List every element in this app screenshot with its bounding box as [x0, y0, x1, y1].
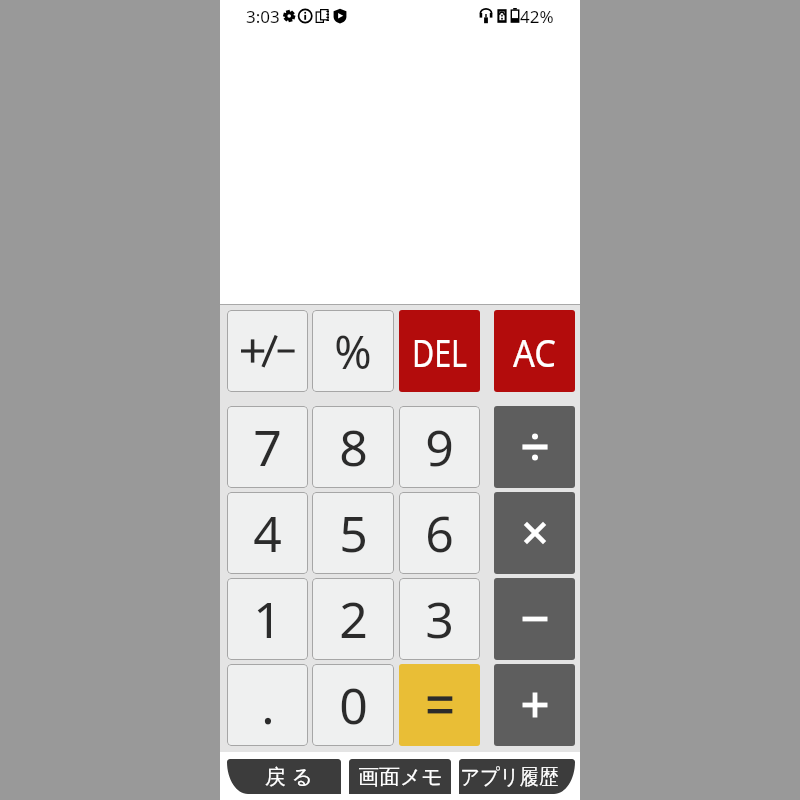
staticText: アプリ履歴	[460, 764, 559, 790]
button[interactable]: 2	[312, 578, 394, 660]
button[interactable]: .	[227, 664, 308, 746]
staticText: 42%	[520, 5, 554, 28]
staticText: 1	[253, 585, 282, 653]
button[interactable]: 7	[227, 406, 308, 488]
staticText: 2	[339, 585, 368, 653]
button[interactable]: Divide	[494, 406, 575, 488]
staticText: 7	[253, 413, 282, 481]
staticText: 3:03	[246, 5, 280, 28]
staticText: 8	[339, 413, 368, 481]
button[interactable]: DEL	[399, 310, 480, 392]
staticText: 戻 る	[265, 762, 313, 791]
staticText: 4	[253, 499, 282, 567]
button[interactable]: Plus	[494, 664, 575, 746]
staticText: 9	[425, 413, 454, 481]
button[interactable]: 9	[399, 406, 480, 488]
staticText: AC	[513, 325, 556, 378]
button[interactable]: %	[312, 310, 394, 392]
staticText: .	[261, 671, 275, 739]
button[interactable]: 画面メモ	[349, 759, 451, 794]
button[interactable]: AC	[494, 310, 575, 392]
button[interactable]: 0	[312, 664, 394, 746]
button[interactable]: 4	[227, 492, 308, 574]
staticText: 0	[339, 671, 368, 739]
staticText: 画面メモ	[358, 764, 443, 790]
button[interactable]: アプリ履歴	[459, 759, 575, 794]
button[interactable]: 戻 る	[227, 759, 341, 794]
button[interactable]: Minus	[494, 578, 575, 660]
staticText: DEL	[412, 325, 467, 378]
button[interactable]: Plus minus	[227, 310, 308, 392]
staticText: 3	[425, 585, 454, 653]
button[interactable]: 3	[399, 578, 480, 660]
button[interactable]: 5	[312, 492, 394, 574]
button[interactable]: Multiply	[494, 492, 575, 574]
button[interactable]: Equals	[399, 664, 480, 746]
button[interactable]: 1	[227, 578, 308, 660]
staticText: %	[334, 321, 372, 382]
button[interactable]: 6	[399, 492, 480, 574]
staticText: 5	[339, 499, 368, 567]
staticText: 6	[425, 499, 454, 567]
button[interactable]: 8	[312, 406, 394, 488]
